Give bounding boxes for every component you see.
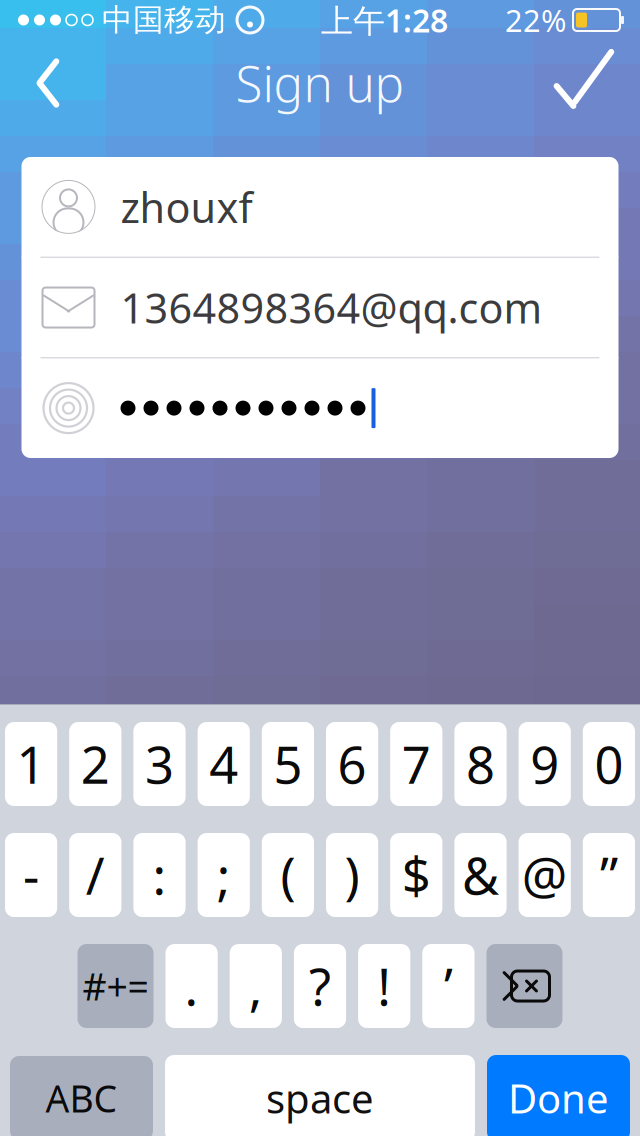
- button[interactable]: zhouxf: [21, 157, 618, 257]
- button[interactable]: ”: [583, 833, 635, 917]
- staticText: 9: [530, 730, 559, 798]
- staticText: Done: [508, 1071, 609, 1124]
- button[interactable]: 0: [583, 722, 635, 806]
- staticText: /: [86, 841, 105, 909]
- staticText: 6: [338, 730, 367, 798]
- button[interactable]: 4: [198, 722, 250, 806]
- staticText: 3: [145, 730, 174, 798]
- button[interactable]: 6: [326, 722, 378, 806]
- button[interactable]: .: [165, 944, 218, 1028]
- staticText: 5: [273, 730, 302, 798]
- staticText: 2: [81, 730, 110, 798]
- button[interactable]: (: [262, 833, 314, 917]
- button[interactable]: :: [133, 833, 186, 917]
- button[interactable]: 8: [454, 722, 507, 806]
- staticText: ,: [249, 952, 263, 1020]
- staticText: ?: [309, 952, 331, 1020]
- button[interactable]: /: [69, 833, 121, 917]
- staticText: (: [280, 841, 295, 909]
- staticText: Sign up: [235, 50, 404, 116]
- staticText: !: [377, 952, 391, 1020]
- staticText: -: [23, 841, 39, 909]
- button[interactable]: 3: [133, 722, 186, 806]
- staticText: 上午1:28: [321, 0, 448, 41]
- button[interactable]: 7: [390, 722, 442, 806]
- staticText: 0: [594, 730, 623, 798]
- staticText: ”: [600, 841, 618, 909]
- staticText: #+=: [82, 961, 148, 1011]
- staticText: 中国移动: [102, 1, 226, 39]
- button[interactable]: $: [390, 833, 442, 917]
- button[interactable]: ,: [230, 944, 282, 1028]
- staticText: 1: [17, 730, 46, 798]
- button[interactable]: ’: [422, 944, 474, 1028]
- staticText: ;: [217, 841, 231, 909]
- staticText: &: [462, 841, 499, 909]
- staticText: .: [185, 952, 199, 1020]
- button[interactable]: #+=: [77, 944, 153, 1028]
- staticText: ): [345, 841, 360, 909]
- button[interactable]: [21, 358, 618, 458]
- button[interactable]: 1: [5, 722, 57, 806]
- staticText: space: [266, 1071, 374, 1124]
- staticText: ABC: [45, 1073, 117, 1123]
- staticText: 4: [209, 730, 238, 798]
- staticText: ’: [444, 952, 453, 1020]
- staticText: 22%: [505, 0, 566, 40]
- button[interactable]: ): [326, 833, 378, 917]
- button[interactable]: -: [5, 833, 57, 917]
- button[interactable]: Delete: [486, 944, 562, 1028]
- button[interactable]: space: [165, 1055, 475, 1136]
- staticText: zhouxf: [120, 179, 252, 234]
- button[interactable]: ?: [294, 944, 346, 1028]
- staticText: 1364898364@qq.com: [120, 280, 542, 335]
- staticText: $: [402, 841, 431, 909]
- button[interactable]: !: [358, 944, 410, 1028]
- button[interactable]: ;: [198, 833, 250, 917]
- button[interactable]: @: [519, 833, 571, 917]
- staticText: 7: [402, 730, 431, 798]
- button[interactable]: ABC: [10, 1056, 153, 1136]
- button[interactable]: Done: [487, 1055, 630, 1136]
- button[interactable]: 1364898364@qq.com: [21, 258, 618, 357]
- staticText: @: [522, 841, 568, 909]
- button[interactable]: 9: [519, 722, 571, 806]
- button[interactable]: 2: [69, 722, 121, 806]
- staticText: 8: [466, 730, 495, 798]
- button[interactable]: &: [454, 833, 507, 917]
- button[interactable]: Done: [530, 40, 640, 126]
- staticText: :: [152, 841, 166, 909]
- button[interactable]: 5: [262, 722, 314, 806]
- button[interactable]: Back: [0, 40, 96, 126]
